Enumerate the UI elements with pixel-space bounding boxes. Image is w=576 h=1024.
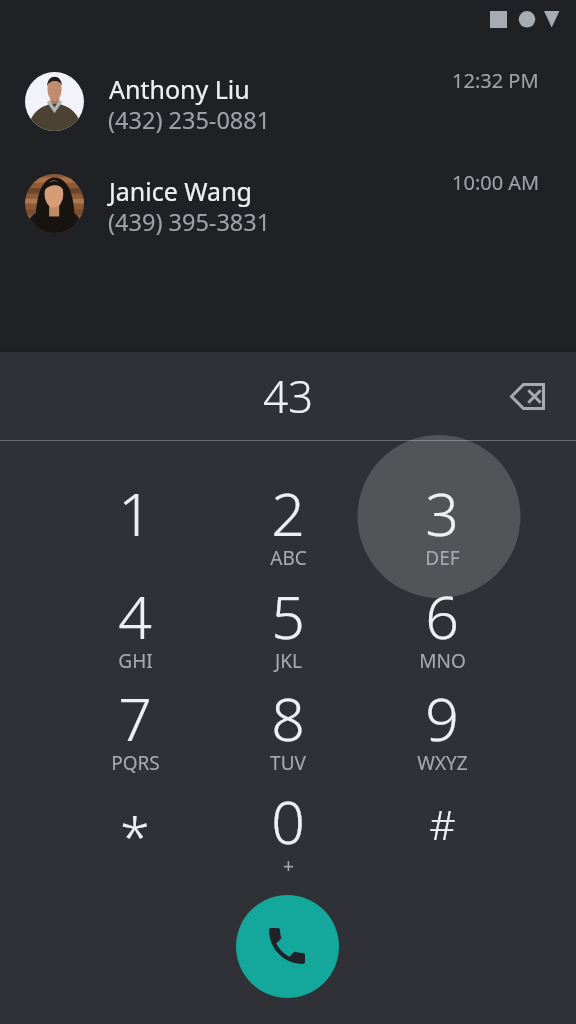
staticText: 8 [271, 678, 305, 758]
button[interactable]: Anthony Liu [0, 62, 576, 154]
staticText: PQRS [111, 750, 160, 776]
staticText: JKL [275, 648, 302, 674]
staticText: 7 [118, 678, 152, 758]
button[interactable]: 1 [58, 441, 212, 544]
staticText: 9 [425, 678, 459, 758]
button[interactable]: 4 [58, 544, 212, 647]
button[interactable]: 3 [365, 441, 519, 544]
staticText: 4 [118, 576, 152, 656]
staticText: DEF [425, 545, 460, 571]
button[interactable]: Backspace [499, 368, 555, 424]
staticText: 12:32 PM [452, 67, 539, 94]
staticText: 1 [118, 473, 152, 553]
button[interactable]: 0 [211, 749, 365, 852]
staticText: 0 [271, 781, 305, 861]
staticText: GHI [118, 648, 153, 674]
staticText: (439) 395-3831 [108, 206, 271, 238]
button[interactable]: 7 [58, 646, 212, 749]
staticText: 2 [271, 473, 305, 553]
staticText: + [283, 853, 294, 879]
staticText: # [429, 796, 456, 852]
staticText: 6 [425, 576, 459, 656]
staticText: Janice Wang [109, 174, 252, 208]
staticText: MNO [419, 648, 466, 674]
button[interactable]: Janice Wang [0, 164, 576, 256]
staticText: 43 [263, 366, 314, 426]
staticText: WXYZ [417, 750, 468, 776]
button[interactable]: # [365, 749, 519, 852]
button[interactable]: 2 [211, 441, 365, 544]
staticText: TUV [270, 750, 306, 776]
staticText: ABC [270, 545, 307, 571]
button[interactable]: 5 [211, 544, 365, 647]
button[interactable]: 9 [365, 646, 519, 749]
button[interactable]: * [58, 749, 212, 852]
staticText: 5 [271, 576, 305, 656]
staticText: 10:00 AM [452, 169, 540, 196]
button[interactable]: Call [236, 895, 339, 998]
button[interactable]: 8 [211, 646, 365, 749]
staticText: * [120, 799, 150, 873]
staticText: 3 [425, 473, 459, 553]
button[interactable]: 6 [365, 544, 519, 647]
staticText: (432) 235-0881 [108, 104, 271, 136]
staticText: Anthony Liu [109, 72, 250, 106]
